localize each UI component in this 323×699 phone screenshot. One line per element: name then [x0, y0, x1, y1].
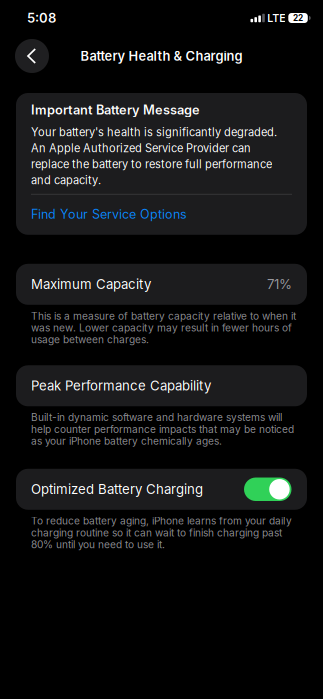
- staticText: To reduce battery aging, iPhone learns f…: [31, 515, 292, 551]
- button[interactable]: Optimized Battery Charging: [244, 477, 291, 501]
- staticText: LTE: [267, 11, 285, 24]
- staticText: Important Battery Message: [31, 102, 200, 117]
- staticText: Built-in dynamic software and hardware s…: [31, 411, 294, 447]
- staticText: Maximum Capacity: [31, 276, 151, 292]
- button[interactable]: Back: [10, 36, 54, 76]
- staticText: Find Your Service Options: [31, 207, 187, 222]
- staticText: 22: [293, 13, 303, 23]
- staticText: 5:08: [27, 10, 56, 26]
- staticText: Optimized Battery Charging: [31, 481, 203, 497]
- staticText: 71%: [267, 276, 292, 292]
- button[interactable]: Find Your Service Options: [31, 195, 187, 224]
- staticText: Battery Health & Charging: [80, 48, 242, 64]
- staticText: Your battery's health is significantly d…: [31, 125, 277, 187]
- staticText: This is a measure of battery capacity re…: [31, 310, 296, 346]
- staticText: Peak Performance Capability: [31, 378, 211, 394]
